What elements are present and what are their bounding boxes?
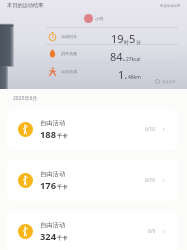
staticText: 小明 [95,16,104,21]
staticText: 自由活动 [40,221,66,229]
staticText: 27kcal [126,56,141,63]
staticText: 324 [40,230,57,243]
staticText: 分 [136,39,141,45]
staticText: 自由活动 [40,170,66,178]
staticText: 6/10 [145,177,156,184]
staticText: 千卡 [57,235,68,242]
button[interactable]: 自由活动 [7,160,178,201]
staticText: 运动时长 [61,34,78,39]
button[interactable]: 自由活动 [7,109,178,150]
staticText: 2025年6月 [13,95,38,102]
staticText: 1. [118,67,128,82]
button[interactable]: 自由活动 [7,211,178,250]
staticText: 消耗热量 [61,51,78,56]
staticText: 84. [110,49,126,64]
staticText: 自由活动 [40,119,66,127]
staticText: 19 [111,31,124,46]
staticText: 本日的运动结果 [7,2,44,9]
staticText: 176 [40,179,57,192]
staticText: 运动距离 [61,69,78,74]
staticText: 千卡 [57,133,68,140]
staticText: 千卡 [57,184,68,191]
staticText: 6/9 [148,228,156,235]
staticText: 5 [129,31,136,46]
staticText: 188 [40,128,57,141]
staticText: 6/10 [145,126,156,133]
button[interactable]: 历史运动记录 [160,4,181,8]
staticText: 更多记录 [162,80,176,84]
staticText: 46km [128,74,141,81]
button[interactable]: 小明 [84,14,104,23]
staticText: 时 [124,39,129,45]
button[interactable]: More [155,79,176,84]
